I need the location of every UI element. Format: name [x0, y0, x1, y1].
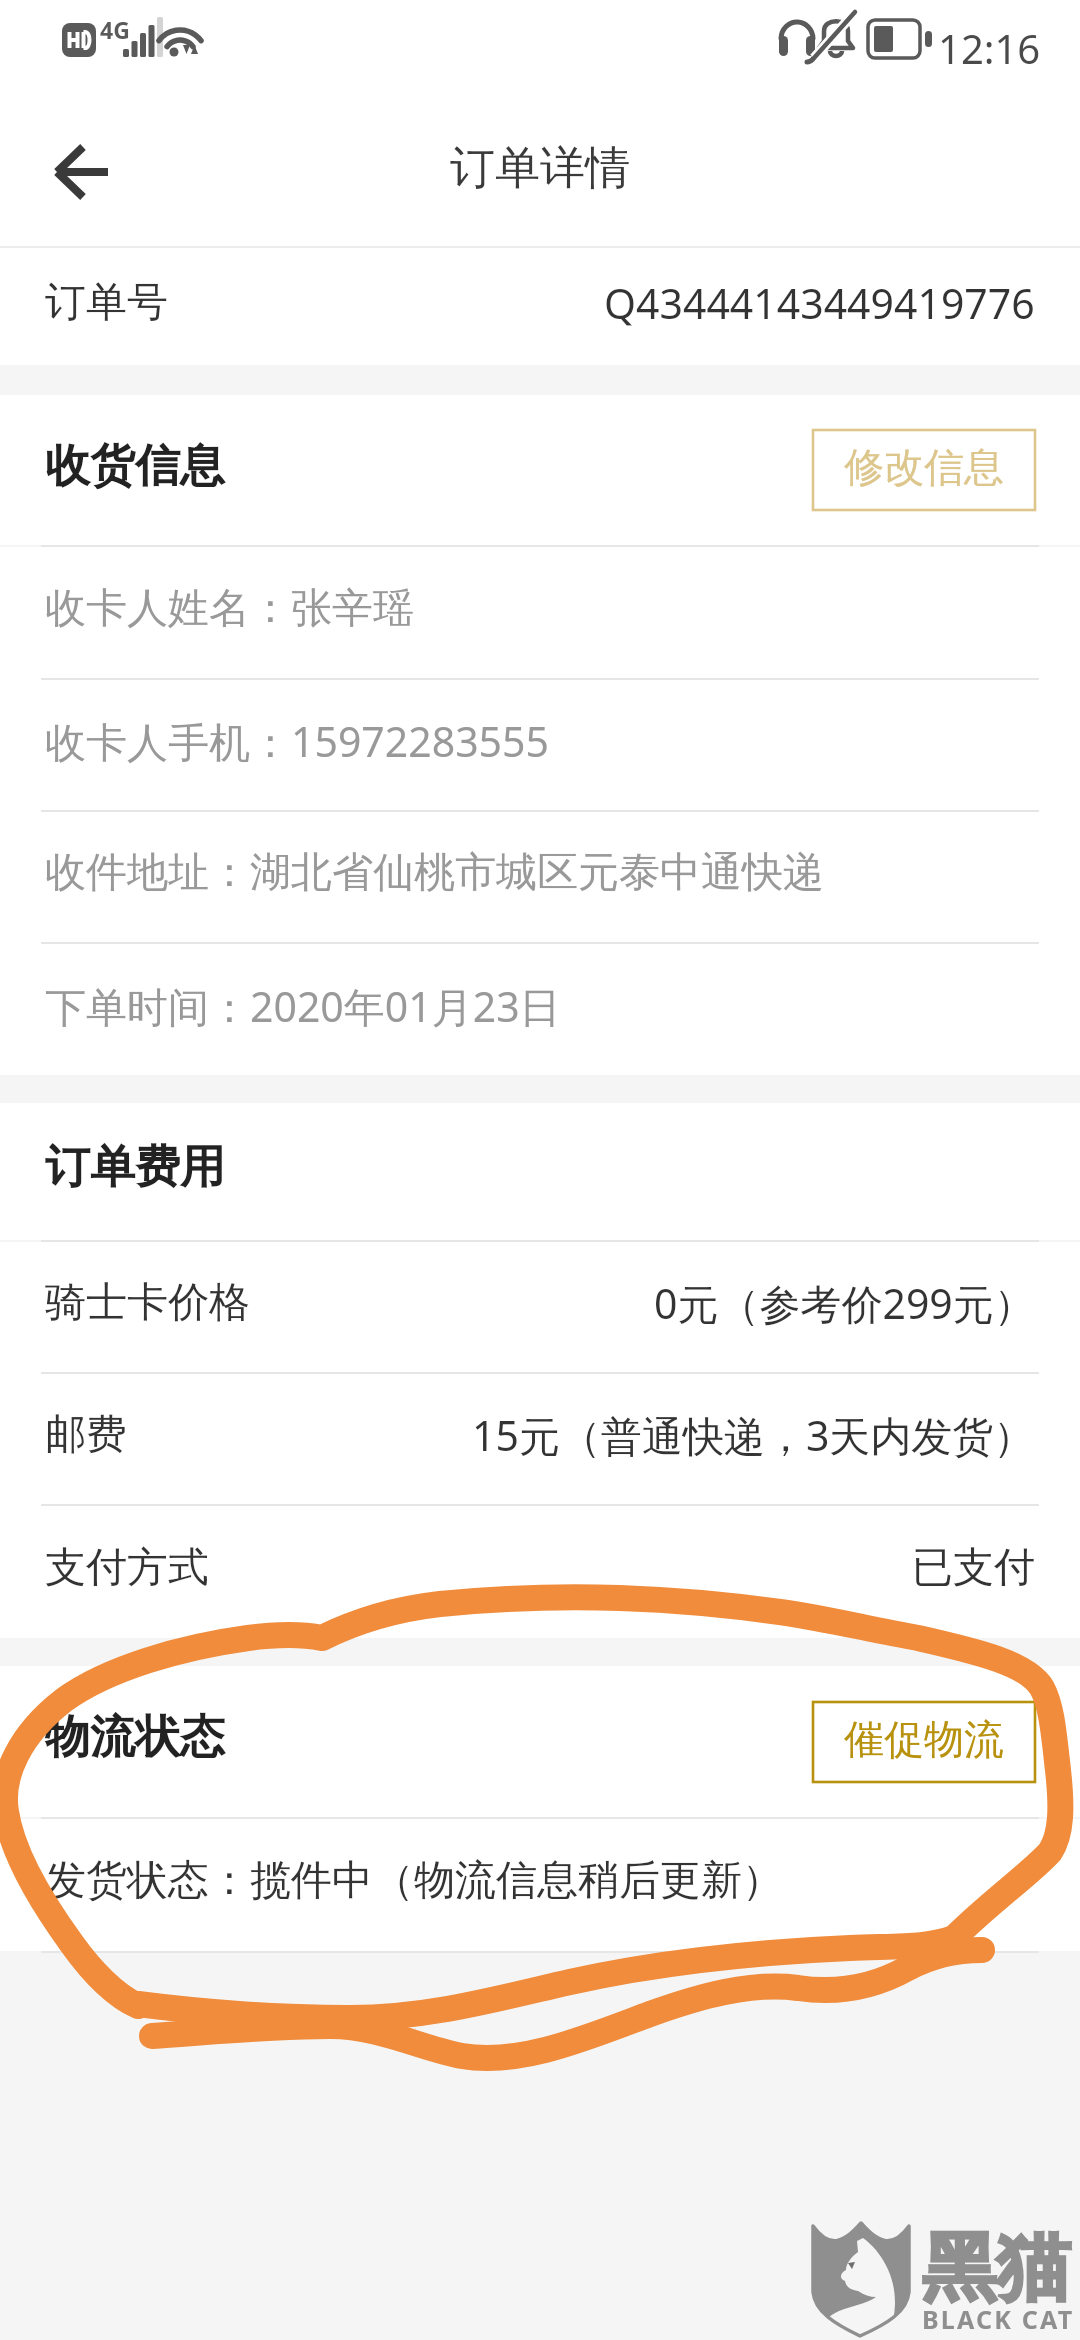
staticText: 修改信息: [844, 442, 1004, 492]
button[interactable]: 收件地址：湖北省仙桃市城区元泰中通快递: [0, 812, 1080, 942]
button[interactable]: 订单号: [0, 248, 1080, 365]
button[interactable]: 支付方式: [0, 1506, 1080, 1638]
staticText: 已支付: [912, 1542, 1035, 1594]
staticText: 0元（参考价299元）: [654, 1275, 1035, 1331]
staticText: 收卡人手机：15972283555: [45, 713, 549, 769]
button[interactable]: Back: [30, 120, 134, 224]
staticText: 支付方式: [45, 1542, 209, 1594]
staticText: 收件地址：湖北省仙桃市城区元泰中通快递: [45, 847, 824, 899]
staticText: 收货信息: [45, 438, 225, 495]
staticText: 订单详情: [450, 140, 630, 197]
staticText: 黑猫: [922, 2222, 1080, 2315]
button[interactable]: 修改信息: [813, 430, 1035, 510]
staticText: 下单时间：2020年01月23日: [45, 978, 561, 1034]
staticText: 骑士卡价格: [45, 1277, 250, 1329]
staticText: 15元（普通快递，3天内发货）: [472, 1407, 1035, 1463]
staticText: 物流状态: [45, 1709, 225, 1766]
button[interactable]: 骑士卡价格: [0, 1242, 1080, 1372]
staticText: 收卡人姓名：张辛瑶: [45, 583, 414, 635]
staticText: 订单费用: [45, 1139, 225, 1196]
staticText: 邮费: [45, 1409, 127, 1461]
staticText: Q43444143449419776: [604, 275, 1035, 331]
button[interactable]: 下单时间：2020年01月23日: [0, 944, 1080, 1075]
staticText: 发货状态：揽件中（物流信息稍后更新）: [45, 1855, 783, 1907]
staticText: 催促物流: [844, 1714, 1004, 1764]
button[interactable]: 收卡人手机：15972283555: [0, 680, 1080, 810]
staticText: BLACK CAT: [922, 2302, 1080, 2336]
staticText: 订单号: [45, 277, 168, 329]
button[interactable]: 催促物流: [813, 1702, 1035, 1782]
staticText: 12:16: [938, 21, 1041, 75]
button[interactable]: 收卡人姓名：张辛瑶: [0, 547, 1080, 678]
staticText: 4G: [100, 14, 130, 45]
button[interactable]: 邮费: [0, 1374, 1080, 1504]
